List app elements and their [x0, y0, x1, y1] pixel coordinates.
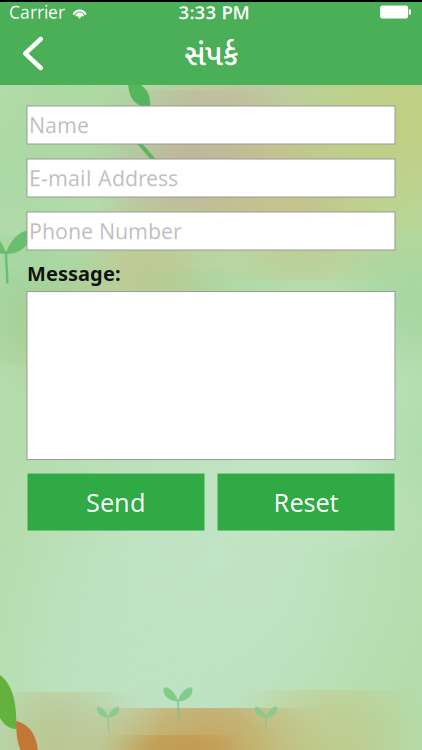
staticText: સંપર્ક	[184, 33, 238, 80]
staticText: Send	[86, 485, 146, 519]
staticText: Message:	[27, 260, 121, 287]
staticText: Reset	[273, 485, 338, 519]
staticText: 3:33 PM	[178, 0, 249, 24]
button[interactable]: Send	[27, 474, 204, 531]
staticText: Phone Number	[29, 217, 182, 245]
button[interactable]: Reset	[217, 474, 394, 531]
staticText: Carrier	[9, 0, 65, 23]
button[interactable]: Back	[0, 22, 66, 85]
staticText: Name	[29, 111, 89, 139]
staticText: E-mail Address	[29, 164, 178, 192]
